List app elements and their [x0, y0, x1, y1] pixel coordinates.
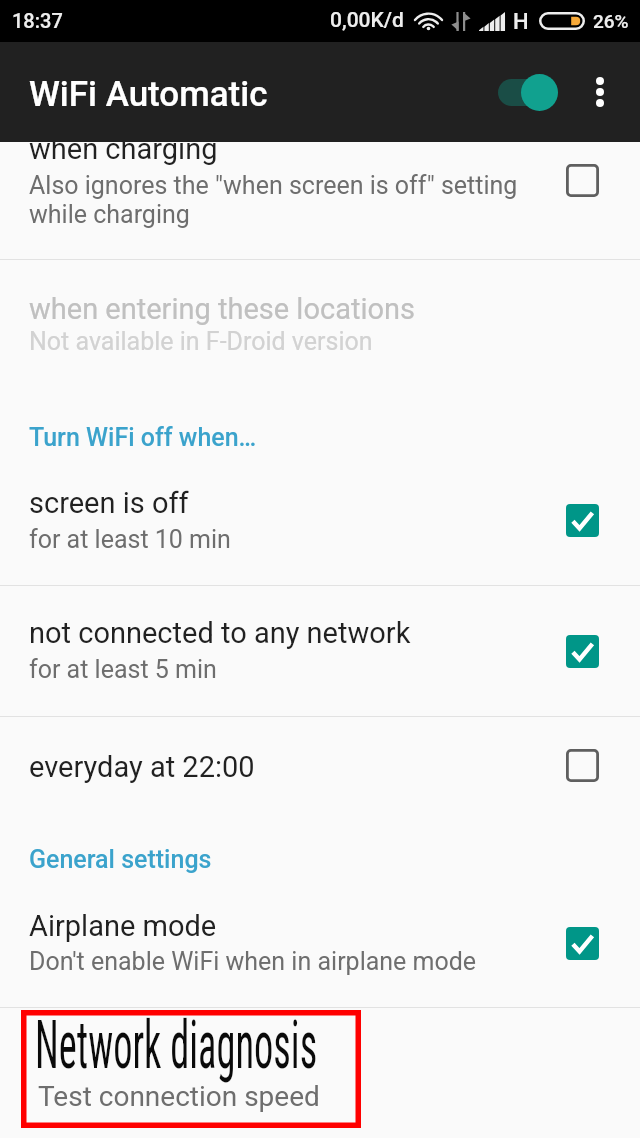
staticText: everyday at 22:00 [29, 750, 255, 784]
staticText: Also ignores the "when screen is off" se… [29, 171, 518, 200]
button[interactable] [0, 890, 640, 1007]
staticText: Network diagnosis [35, 1007, 317, 1084]
button[interactable] [0, 586, 640, 716]
button[interactable] [0, 142, 640, 259]
staticText: 26% [593, 10, 629, 32]
staticText: Not available in F-Droid version [29, 327, 373, 356]
staticText: General settings [29, 845, 212, 874]
staticText: 18:37 [12, 9, 63, 32]
staticText: WiFi Automatic [29, 74, 268, 115]
button[interactable]: Enabled [559, 628, 605, 674]
staticText: Test connection speed [38, 1080, 320, 1113]
staticText: 0,00K/d [330, 8, 404, 33]
staticText: screen is off [29, 486, 189, 520]
button[interactable]: Toggle WiFi Automatic [495, 56, 561, 128]
button[interactable]: Enabled [559, 497, 605, 543]
button[interactable] [0, 717, 640, 820]
staticText: Airplane mode [29, 909, 217, 943]
staticText: Turn WiFi off when… [29, 423, 257, 452]
button[interactable] [0, 260, 640, 400]
button[interactable]: Disabled [559, 742, 605, 788]
staticText: while charging [29, 200, 190, 229]
button[interactable]: Disabled [559, 157, 605, 203]
staticText: Don't enable WiFi when in airplane mode [29, 947, 477, 976]
staticText: when charging [29, 132, 218, 166]
button[interactable]: Enabled [559, 920, 605, 966]
staticText: not connected to any network [29, 616, 411, 650]
button[interactable] [0, 466, 640, 585]
staticText: H [513, 9, 529, 35]
button[interactable] [0, 1008, 640, 1138]
button[interactable]: More options [575, 56, 625, 128]
staticText: for at least 10 min [29, 525, 231, 554]
staticText: for at least 5 min [29, 655, 217, 684]
staticText: when entering these locations [29, 292, 415, 326]
